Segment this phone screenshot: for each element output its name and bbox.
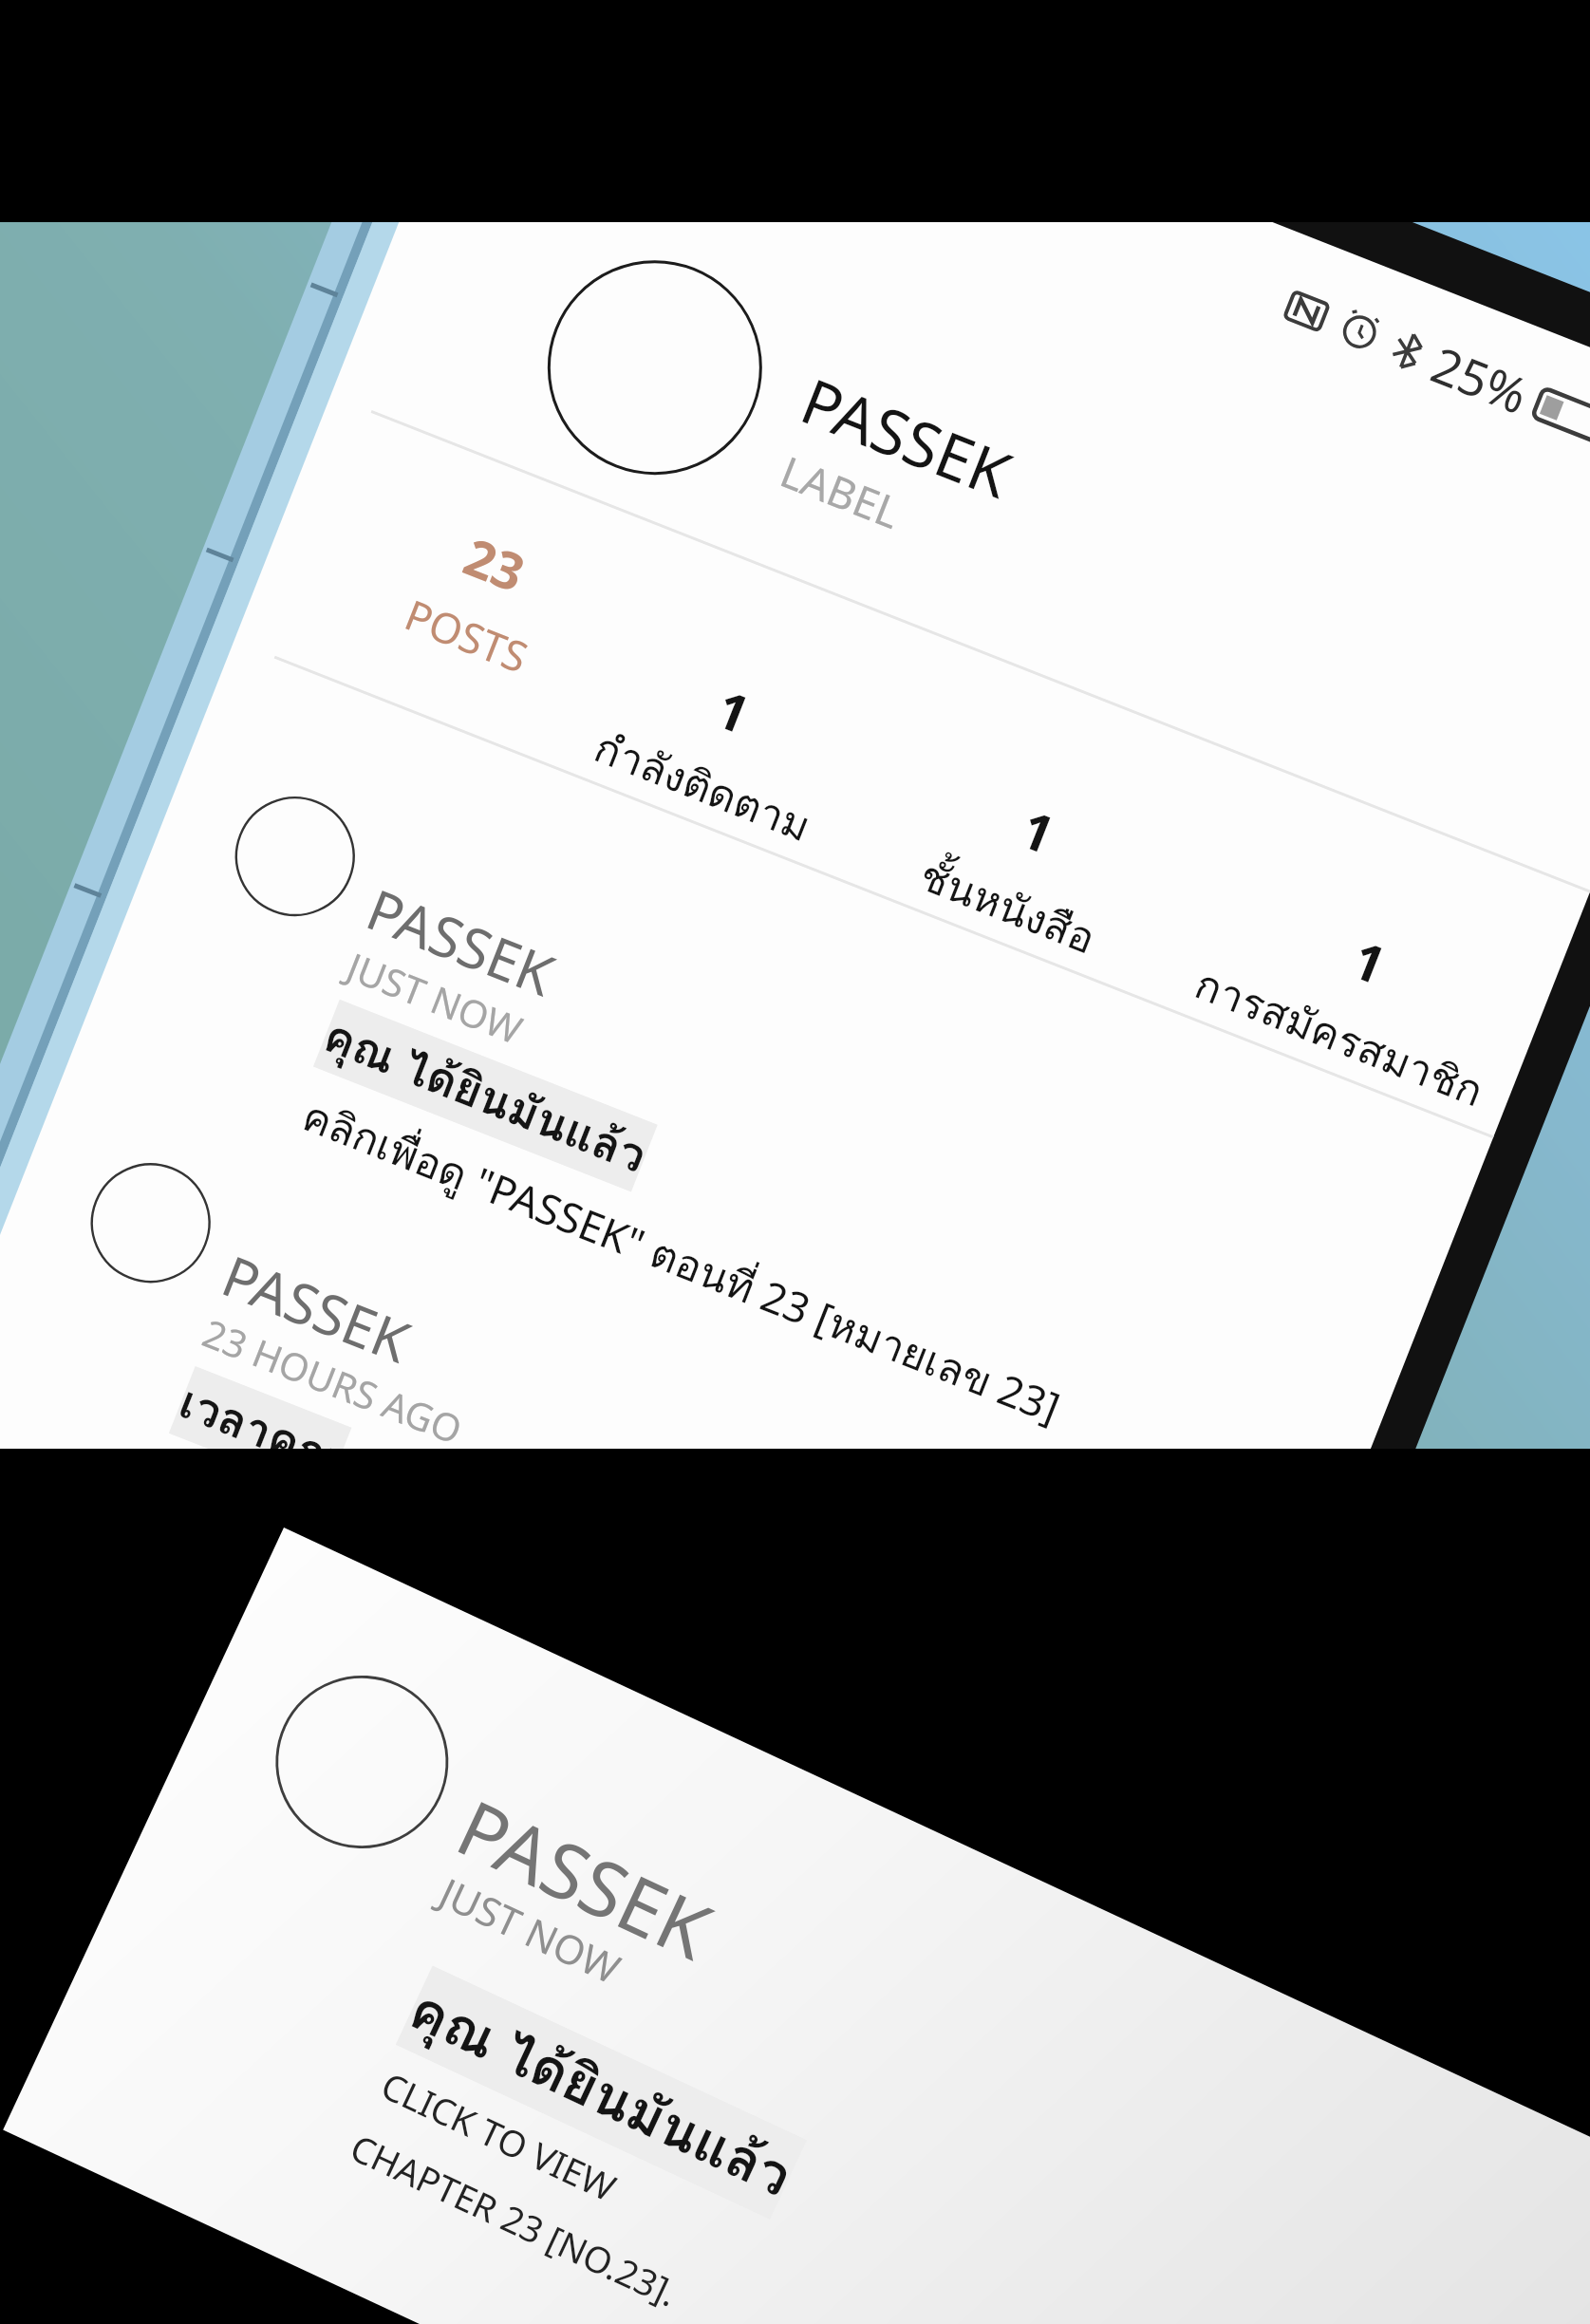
other: Battery 25 percent [1529,380,1590,458]
staticText: 1 [1343,923,1396,999]
staticText: กำลังติดตาม [585,714,821,859]
button[interactable]: PASSEK [3,1527,1590,2324]
staticText: คุณ ได้ยินมันแล้ว [313,999,658,1192]
button[interactable]: PASSEK [0,1066,1332,1449]
staticText: LABEL [773,442,910,541]
staticText: 1 [707,673,760,749]
button[interactable]: PASSEK [464,222,1357,748]
other: Bluetooth [1381,325,1433,377]
staticText: PASSEK [357,870,566,1012]
staticText: POSTS [397,585,536,685]
staticText: 25% [1422,330,1538,428]
button[interactable]: 23 [346,488,618,705]
other: NFC [1278,283,1335,339]
other: Alarm [1331,304,1388,360]
staticText: JUST NOW [432,1865,629,1995]
staticText: การสมัครสมาชิก [1185,950,1493,1124]
button[interactable]: 1 [1150,859,1558,1138]
button[interactable]: PASSEK [84,700,1476,1449]
button[interactable]: 1 [859,744,1187,991]
staticText: 23 HOURS AGO [196,1306,470,1449]
staticText: เวลาคุณ [169,1366,352,1449]
staticText: CLICK TO VIEW [374,2060,625,2212]
staticText: CHAPTER 23 [NO.23]. [343,2122,686,2317]
staticText: PASSEK [212,1237,421,1379]
staticText: JUST NOW [340,940,530,1055]
staticText: PASSEK [442,1774,728,1981]
staticText: 23 [455,520,535,607]
staticText: คลิกเพื่อดู "PASSEK" ตอนที่ 23 [หมายเลข … [293,1082,1071,1441]
staticText: ชั้นหนังสือ [910,842,1106,971]
staticText: PASSEK [790,357,1024,516]
button[interactable]: 1 [541,619,896,877]
staticText: 1 [1012,793,1065,869]
staticText: คุณ ได้ยินมันแล้ว [396,1966,807,2219]
